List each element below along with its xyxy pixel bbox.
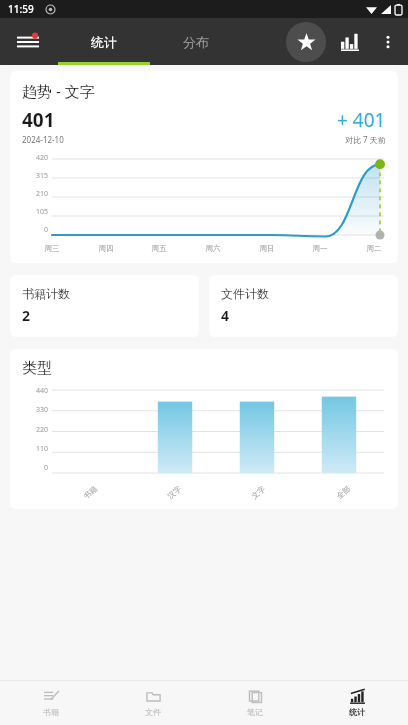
staticText: 统计 [91, 34, 117, 50]
staticText: 2024-12-10 [22, 134, 64, 145]
staticText: 周一 [308, 244, 332, 253]
button[interactable]: More options [370, 24, 406, 60]
staticText: 类型 [22, 359, 52, 378]
staticText: 笔记 [247, 707, 263, 717]
staticText: 周六 [201, 244, 225, 253]
staticText: 周四 [94, 244, 118, 253]
staticText: 315 [22, 171, 48, 181]
staticText: 401 [22, 107, 55, 133]
staticText: 110 [22, 444, 48, 454]
staticText: 书籍计数 [22, 286, 70, 301]
staticText: 0 [22, 463, 48, 473]
staticText: 420 [22, 153, 48, 163]
staticText: 文字 [250, 484, 267, 501]
button[interactable]: 书籍 [0, 681, 102, 725]
staticText: 全部 [335, 484, 352, 501]
staticText: 趋势 - 文字 [22, 81, 95, 101]
staticText: 对比 7 天前 [345, 134, 386, 145]
staticText: 220 [22, 425, 48, 435]
button[interactable]: 文件计数 [209, 275, 398, 337]
staticText: 4 [221, 306, 230, 325]
staticText: 105 [22, 207, 48, 217]
staticText: 11:59 [8, 2, 34, 16]
button[interactable]: 分布 [150, 18, 242, 65]
staticText: 周二 [362, 244, 386, 253]
button[interactable]: 笔记 [204, 681, 306, 725]
button[interactable]: Menu [8, 22, 48, 62]
staticText: 0 [22, 225, 48, 235]
button[interactable]: 书籍计数 [10, 275, 199, 337]
button[interactable]: 文件 [102, 681, 204, 725]
staticText: 统计 [349, 707, 365, 717]
button[interactable]: 趋势 - 文字 [10, 71, 398, 263]
staticText: 周三 [40, 244, 64, 253]
button[interactable]: 统计 [58, 18, 150, 65]
staticText: 周五 [147, 244, 171, 253]
staticText: 2 [22, 306, 31, 325]
button[interactable]: Chart [330, 22, 370, 62]
staticText: 330 [22, 405, 48, 415]
staticText: 周日 [255, 244, 279, 253]
staticText: + 401 [337, 107, 386, 133]
staticText: 书籍 [43, 707, 59, 717]
staticText: 分布 [183, 34, 209, 50]
staticText: 210 [22, 189, 48, 199]
button[interactable]: 统计 [306, 681, 408, 725]
button[interactable]: Favorite [286, 22, 326, 62]
button[interactable]: 类型 [10, 349, 398, 509]
staticText: 文件计数 [221, 286, 269, 301]
staticText: 汉字 [166, 484, 183, 501]
staticText: 书籍 [82, 484, 99, 501]
staticText: 文件 [145, 707, 161, 717]
staticText: 440 [22, 386, 48, 396]
